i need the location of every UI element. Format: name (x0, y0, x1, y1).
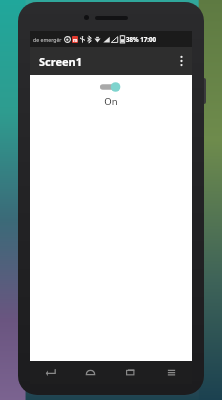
staticText: 38% 17:00 (126, 35, 157, 43)
button[interactable]: Home (70, 361, 110, 384)
button[interactable]: Back (30, 361, 70, 384)
staticText: Screen1 (39, 54, 83, 69)
button[interactable]: More options (170, 48, 192, 74)
button[interactable]: Menu (151, 361, 192, 384)
staticText: de emergёг (33, 36, 62, 43)
staticText: On (104, 95, 118, 108)
button[interactable]: Toggle switch, On (99, 81, 123, 93)
staticText: m (73, 37, 78, 43)
button[interactable]: Recents (110, 361, 151, 384)
